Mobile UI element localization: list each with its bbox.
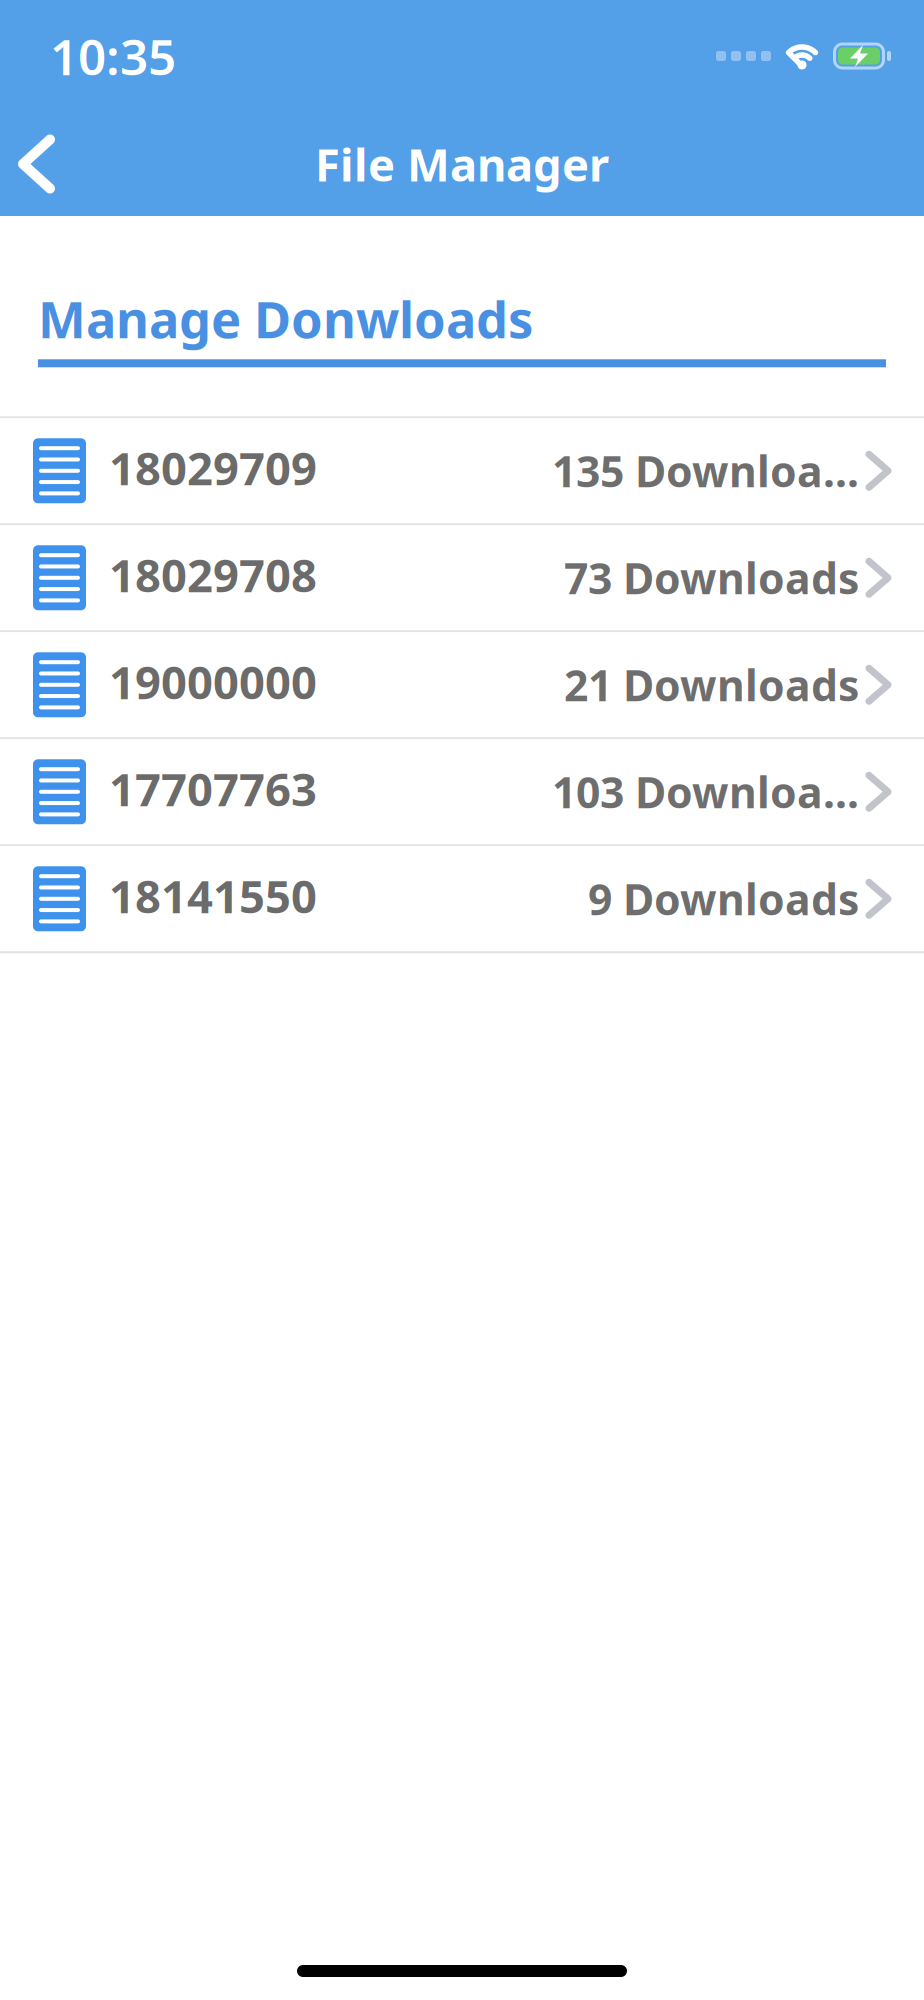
- staticText: 18141550: [109, 866, 317, 926]
- staticText: 19000000: [109, 652, 317, 712]
- staticText: 135 Downloa...: [552, 442, 859, 499]
- staticText: File Manager: [315, 134, 609, 194]
- button[interactable]: 17707763: [0, 739, 924, 844]
- staticText: 18029709: [109, 438, 317, 498]
- staticText: 10:35: [50, 23, 176, 89]
- button[interactable]: Back: [0, 114, 70, 213]
- button[interactable]: 19000000: [0, 632, 924, 737]
- staticText: Manage Donwloads: [38, 285, 533, 352]
- staticText: 73 Downloads: [564, 549, 859, 606]
- button[interactable]: 18029709: [0, 418, 924, 523]
- staticText: 103 Downloa...: [552, 763, 859, 820]
- staticText: 21 Downloads: [564, 656, 859, 713]
- button[interactable]: 18029708: [0, 525, 924, 630]
- staticText: 9 Downloads: [588, 870, 859, 927]
- staticText: 18029708: [109, 545, 317, 605]
- staticText: 17707763: [109, 759, 317, 819]
- button[interactable]: 18141550: [0, 846, 924, 951]
